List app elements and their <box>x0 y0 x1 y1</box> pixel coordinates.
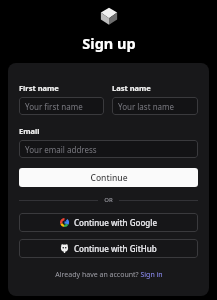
staticText: Your email address <box>25 144 97 155</box>
staticText: First name <box>19 83 59 93</box>
other: Logo <box>98 5 120 27</box>
button[interactable]: Continue <box>19 168 198 187</box>
staticText: Continue <box>90 172 128 184</box>
button[interactable]: Your first name <box>19 97 104 115</box>
button[interactable]: Continue with Google <box>19 213 198 232</box>
button[interactable]: Already have an account? Sign in <box>55 270 163 280</box>
staticText: Sign up <box>82 33 136 53</box>
staticText: OR <box>104 196 113 204</box>
staticText: Your last name <box>118 101 175 112</box>
staticText: Email <box>19 126 40 136</box>
staticText: Continue with GitHub <box>74 243 157 254</box>
staticText: Continue with Google <box>74 217 157 228</box>
button[interactable]: Continue with GitHub <box>19 239 198 258</box>
button[interactable]: Your last name <box>112 97 198 115</box>
button[interactable]: Your email address <box>19 140 198 158</box>
staticText: Last name <box>112 83 151 93</box>
staticText: Already have an account? Sign in <box>55 270 163 280</box>
staticText: Your first name <box>25 101 83 112</box>
